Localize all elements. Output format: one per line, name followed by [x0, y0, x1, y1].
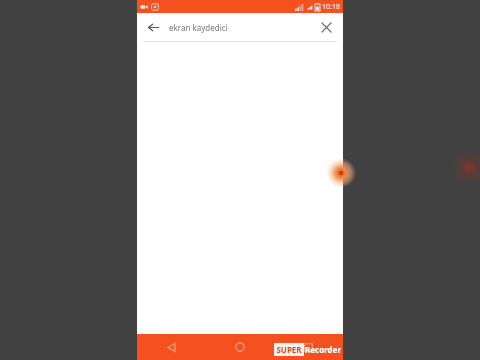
button[interactable]: Home: [205, 334, 274, 360]
button[interactable]: Back: [137, 334, 205, 360]
staticText: SUPER: [276, 344, 302, 355]
button[interactable]: Clear search: [316, 17, 336, 37]
staticText: 10:18: [322, 2, 340, 12]
button[interactable]: Back: [143, 17, 163, 37]
button[interactable]: Recent apps: [274, 334, 343, 360]
staticText: ekran kaydedici: [169, 22, 228, 33]
button[interactable]: Recorder floating button: [326, 158, 356, 188]
button[interactable]: ekran kaydedici: [169, 13, 316, 41]
staticText: Recorder: [305, 344, 341, 355]
